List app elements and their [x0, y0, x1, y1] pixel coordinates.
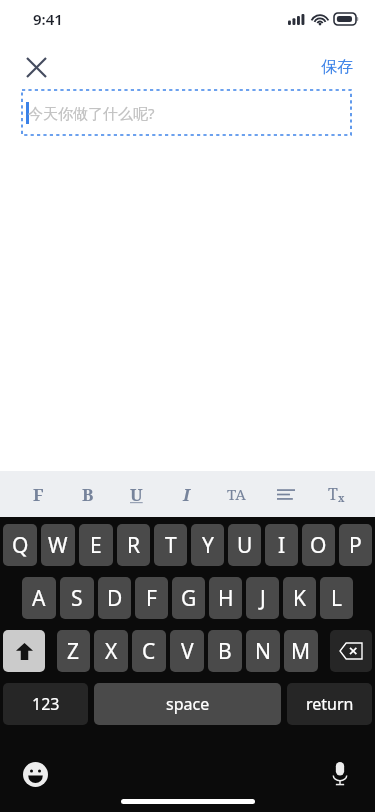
staticText: J — [260, 584, 266, 613]
staticText: H — [218, 584, 234, 613]
button[interactable]: 今天你做了什么呢? — [22, 90, 351, 135]
button[interactable]: A — [22, 577, 56, 619]
button[interactable]: return — [287, 683, 372, 725]
button[interactable]: M — [284, 630, 318, 672]
button[interactable]: Bold — [63, 471, 112, 517]
button[interactable]: J — [246, 577, 279, 619]
staticText: X — [105, 637, 118, 666]
staticText: I — [183, 483, 190, 506]
staticText: O — [310, 531, 327, 560]
button[interactable]: R — [117, 524, 150, 566]
button[interactable]: D — [98, 577, 131, 619]
button[interactable]: U — [228, 524, 261, 566]
staticText: TA — [227, 484, 246, 504]
staticText: U — [130, 483, 143, 506]
staticText: x — [338, 491, 345, 505]
staticText: B — [82, 483, 94, 506]
staticText: space — [166, 693, 210, 715]
button[interactable]: Shift — [3, 630, 45, 672]
staticText: N — [255, 637, 271, 666]
button[interactable]: G — [172, 577, 205, 619]
staticText: B — [218, 637, 232, 666]
button[interactable]: Backspace — [330, 630, 372, 672]
button[interactable]: O — [302, 524, 335, 566]
button[interactable]: W — [41, 524, 75, 566]
staticText: L — [331, 584, 343, 613]
button[interactable]: X — [94, 630, 128, 672]
staticText: 123 — [32, 693, 60, 715]
button[interactable]: Clear formatting — [311, 471, 361, 517]
button[interactable]: Emoji — [16, 755, 54, 793]
button[interactable]: Close — [14, 45, 58, 89]
button[interactable]: Dictation — [321, 755, 359, 793]
staticText: 9:41 — [33, 9, 63, 29]
button[interactable]: V — [170, 630, 204, 672]
staticText: P — [349, 531, 362, 560]
staticText: T — [328, 483, 338, 505]
staticText: U — [237, 531, 253, 560]
staticText: R — [127, 531, 141, 560]
staticText: A — [32, 584, 46, 613]
staticText: E — [90, 531, 102, 560]
button[interactable]: 保存 — [311, 51, 363, 83]
staticText: Q — [12, 531, 29, 560]
button[interactable]: T — [154, 524, 187, 566]
button[interactable]: I — [265, 524, 298, 566]
staticText: G — [181, 584, 197, 613]
staticText: V — [181, 637, 194, 666]
button[interactable]: E — [79, 524, 113, 566]
button[interactable]: P — [339, 524, 372, 566]
staticText: Y — [202, 531, 214, 560]
staticText: 保存 — [321, 57, 353, 77]
button[interactable]: Font — [14, 471, 63, 517]
button[interactable]: S — [60, 577, 94, 619]
staticText: Z — [67, 637, 80, 666]
staticText: D — [107, 584, 123, 613]
button[interactable]: 123 — [3, 683, 88, 725]
button[interactable]: Underline — [112, 471, 161, 517]
button[interactable]: N — [246, 630, 280, 672]
staticText: F — [146, 584, 157, 613]
staticText: return — [306, 693, 354, 715]
button[interactable]: Align — [261, 471, 311, 517]
staticText: K — [293, 584, 306, 613]
button[interactable]: L — [320, 577, 353, 619]
staticText: 今天你做了什么呢? — [28, 103, 155, 123]
staticText: W — [48, 531, 68, 560]
button[interactable]: Italic — [161, 471, 211, 517]
button[interactable]: space — [94, 683, 281, 725]
button[interactable]: K — [283, 577, 316, 619]
button[interactable]: Z — [57, 630, 90, 672]
button[interactable]: B — [208, 630, 242, 672]
staticText: F — [33, 483, 44, 506]
staticText: I — [278, 531, 286, 560]
staticText: T — [165, 531, 177, 560]
button[interactable]: Y — [191, 524, 224, 566]
staticText: S — [71, 584, 83, 613]
button[interactable]: C — [132, 630, 166, 672]
button[interactable]: Q — [3, 524, 37, 566]
button[interactable]: F — [135, 577, 168, 619]
staticText: M — [291, 637, 311, 666]
button[interactable]: H — [209, 577, 242, 619]
staticText: C — [142, 637, 156, 666]
button[interactable]: Text size — [211, 471, 261, 517]
